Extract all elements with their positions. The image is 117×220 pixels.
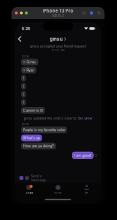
button[interactable]: Screenshot [82,11,86,15]
staticText: I am good! [74,153,91,158]
staticText: Send a message... [31,174,49,182]
button[interactable]: Chats [15,183,44,196]
staticText: “Bio Glow” [77,117,92,120]
staticText: 8:34 AM [52,48,64,52]
staticText: iPhone 13 Pro [42,8,73,14]
staticText: ginsu accepted your friend request [30,44,86,48]
button[interactable]: Photos [25,176,29,180]
staticText: Ryan [26,68,34,72]
staticText: Me [85,191,89,194]
staticText: ginsu [21,55,29,58]
staticText: Chats [26,191,33,194]
button[interactable]: Camera [19,176,23,180]
staticText: 8:28 [21,26,30,31]
button[interactable]: Record [90,11,93,15]
staticText: ginsu [50,36,63,42]
button[interactable]: Home [44,183,72,196]
button[interactable]: Me [72,183,101,196]
button[interactable]: ginsu [50,35,66,43]
staticText: Home [54,191,62,194]
staticText: ! [23,100,24,104]
staticText: ! [23,92,24,96]
staticText: ! [23,76,24,80]
staticText: What's up [23,136,40,140]
button[interactable]: Back [15,34,26,43]
button[interactable]: Send a message... [31,175,63,181]
staticText: iOS 15.2 [52,14,64,17]
staticText: ginsu [21,122,29,126]
staticText: Purple is my favorite color [23,128,65,132]
button[interactable]: More options [97,11,100,15]
staticText: ginsu updated the chat's color to [23,117,77,120]
staticText: Cammi is lit [23,108,43,113]
staticText: How are ya doing? [23,144,54,148]
staticText: ! [23,84,24,88]
staticText: Ginsu [26,60,36,64]
